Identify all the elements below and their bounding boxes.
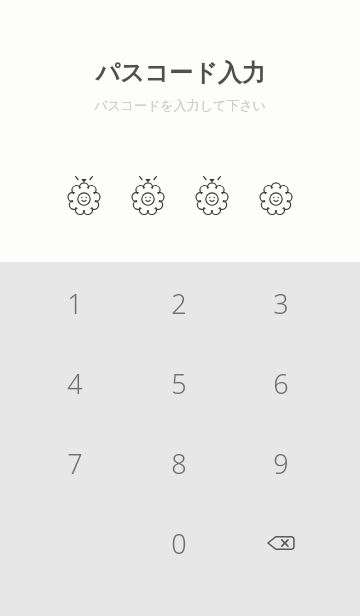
button[interactable]: 9 [231,423,331,503]
button[interactable]: 8 [127,423,231,503]
staticText: 4 [67,365,83,402]
button[interactable]: 3 [231,263,331,343]
button[interactable]: 4 [23,343,127,423]
button[interactable]: 5 [127,343,231,423]
staticText: 3 [273,285,289,322]
staticText: 9 [273,445,289,482]
staticText: 7 [67,445,83,482]
staticText: パスコードを入力して下さい [94,97,266,113]
button[interactable]: Delete [231,503,331,583]
button[interactable]: 1 [23,263,127,343]
staticText: 0 [171,525,187,562]
staticText: 6 [273,365,289,402]
button[interactable]: 0 [127,503,231,583]
staticText: 1 [67,285,83,322]
staticText: 2 [171,285,187,322]
button[interactable]: 7 [23,423,127,503]
button[interactable]: 6 [231,343,331,423]
button[interactable]: 2 [127,263,231,343]
staticText: 5 [171,365,187,402]
staticText: 8 [171,445,187,482]
staticText: パスコード入力 [95,58,266,88]
